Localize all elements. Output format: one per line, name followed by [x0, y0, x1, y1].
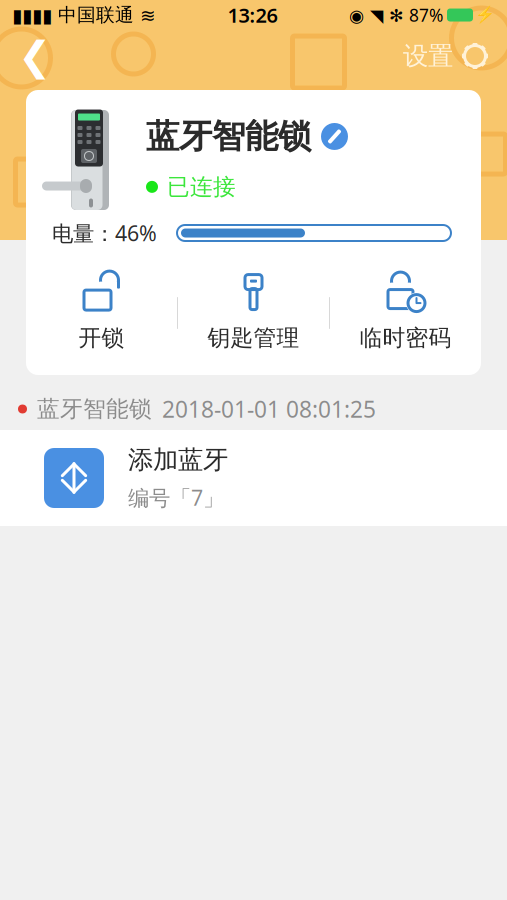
staticText: ⚡ [475, 6, 495, 24]
staticText: 13:26 [227, 2, 277, 28]
button[interactable]: Edit device name [321, 123, 348, 150]
staticText: 设置 [403, 40, 453, 71]
staticText: ▮▮▮▮ 中国联通 ≋ [12, 3, 156, 26]
staticText: 钥匙管理 [207, 324, 299, 352]
button[interactable]: 钥匙管理 [178, 265, 329, 361]
staticText: 添加蓝牙 [128, 444, 228, 475]
button[interactable]: Settings [393, 32, 499, 80]
button[interactable]: Back [8, 32, 62, 80]
staticText: 开锁 [78, 324, 124, 352]
staticText: 临时密码 [359, 324, 451, 352]
staticText: 电量：46% [52, 219, 157, 247]
staticText: 编号「7」 [128, 483, 224, 512]
staticText: ❮ [18, 33, 52, 79]
staticText: ◉ ◥ ✻ 87% [349, 3, 443, 26]
staticText: 蓝牙智能锁 [146, 116, 311, 157]
button[interactable]: 开锁 [26, 265, 177, 361]
button[interactable]: 临时密码 [330, 265, 481, 361]
staticText: 已连接 [167, 173, 236, 201]
staticText: 2018-01-01 08:01:25 [162, 394, 376, 424]
button[interactable]: 添加蓝牙 [0, 430, 507, 526]
staticText: 蓝牙智能锁 [37, 395, 152, 423]
